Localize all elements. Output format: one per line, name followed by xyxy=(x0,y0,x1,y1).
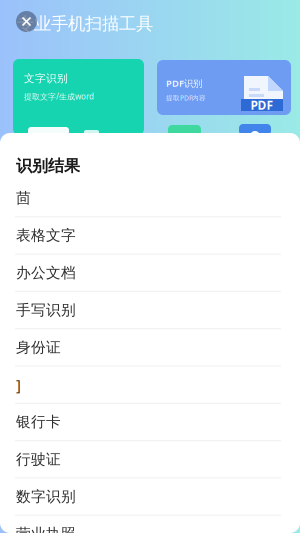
button[interactable]: Close ad xyxy=(16,11,37,32)
button[interactable]: 茴 xyxy=(0,180,300,217)
staticText: 茴 xyxy=(16,189,31,207)
staticText: 数字识别 xyxy=(16,487,76,505)
button[interactable]: 营业执照 xyxy=(0,516,300,533)
staticText: ] xyxy=(16,375,21,394)
staticText: 专业手机扫描工具 xyxy=(17,13,153,34)
staticText: PDF识别 xyxy=(166,77,202,89)
button[interactable]: 数字识别 xyxy=(0,478,300,516)
staticText: 提取PDF内容 xyxy=(166,93,206,102)
staticText: 手写识别 xyxy=(16,301,76,319)
staticText: 识别结果 xyxy=(16,156,80,176)
button[interactable]: PDF识别 xyxy=(157,60,291,115)
staticText: 文字识别 xyxy=(24,72,68,85)
staticText: 身份证 xyxy=(16,338,61,356)
staticText: 提取文字/生成word xyxy=(24,91,94,102)
staticText: 表格文字 xyxy=(16,226,76,244)
button[interactable]: 银行卡 xyxy=(0,404,300,441)
button[interactable]: 身份证 xyxy=(0,329,300,366)
staticText: PDF xyxy=(250,97,273,113)
button[interactable]: 行驶证 xyxy=(0,441,300,478)
staticText: 营业执照 xyxy=(16,525,76,533)
button[interactable]: 表格文字 xyxy=(0,217,300,255)
staticText: 行驶证 xyxy=(16,450,61,468)
staticText: 办公文档 xyxy=(16,264,76,282)
button[interactable]: 文字识别 xyxy=(13,59,144,135)
button[interactable]: 办公文档 xyxy=(0,255,300,292)
staticText: 银行卡 xyxy=(16,413,61,431)
button[interactable]: 手写识别 xyxy=(0,292,300,329)
button[interactable]: ] xyxy=(0,366,300,404)
